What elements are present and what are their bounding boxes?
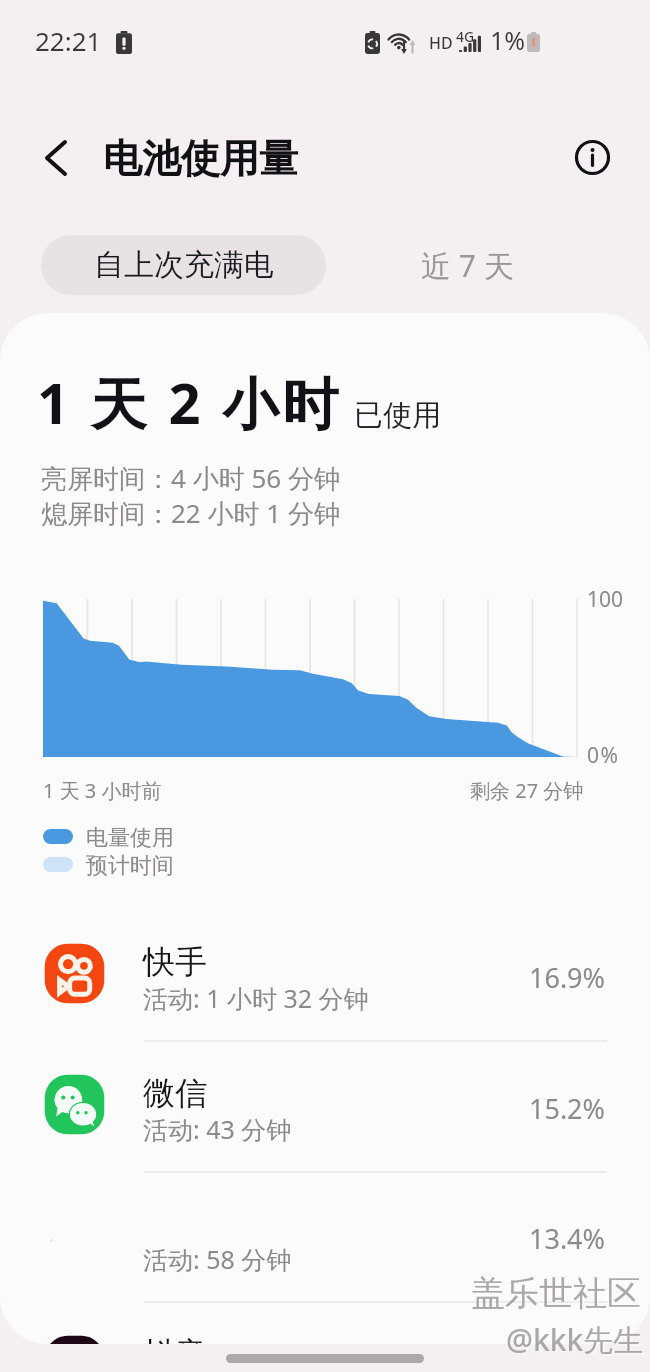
staticText: 已使用	[354, 397, 441, 434]
staticText: 剩余 27 分钟	[470, 777, 584, 804]
staticText: 4G	[456, 27, 475, 46]
staticText: 13.4%	[529, 1220, 606, 1256]
staticText: 盖乐世社区	[473, 1274, 643, 1317]
staticText: 微信	[143, 1073, 207, 1113]
button[interactable]: 快手	[0, 923, 650, 1054]
staticText: 亮屏时间：4 小时 56 分钟	[41, 460, 340, 496]
button[interactable]: 活动: 58 分钟	[0, 1184, 650, 1315]
button[interactable]: Information	[570, 135, 615, 180]
staticText: 电量使用	[86, 824, 174, 852]
staticText: 快手	[143, 942, 207, 982]
button[interactable]: Back	[30, 133, 80, 183]
staticText: 1 天 2 小时	[37, 364, 342, 440]
staticText: @kkk先生	[506, 1319, 644, 1360]
staticText: 盖乐世社区	[471, 1272, 641, 1315]
staticText: 自上次充满电	[94, 246, 274, 284]
staticText: 近 7 天	[421, 245, 514, 286]
staticText: 抖音	[143, 1334, 207, 1344]
staticText: 15.2%	[529, 1090, 606, 1126]
staticText: HD	[429, 32, 453, 54]
staticText: 1 天 3 小时前	[43, 777, 162, 804]
staticText: 活动: 43 分钟	[143, 1112, 292, 1146]
staticText: 活动: 58 分钟	[143, 1242, 292, 1276]
staticText: 电池使用量	[103, 134, 298, 183]
staticText: @kkk先生	[508, 1321, 646, 1362]
staticText: 1%	[490, 23, 526, 57]
staticText: 0%	[587, 741, 620, 770]
button[interactable]: 抖音	[0, 1315, 650, 1344]
staticText: 熄屏时间：22 小时 1 分钟	[41, 495, 340, 531]
staticText: 活动: 1 小时 32 分钟	[143, 981, 369, 1015]
staticText: 预计时间	[86, 852, 174, 880]
staticText: 22:21	[35, 23, 102, 58]
button[interactable]: 自上次充满电	[41, 235, 326, 295]
button[interactable]: 微信	[0, 1054, 650, 1185]
button[interactable]: 近 7 天	[372, 235, 562, 295]
staticText: 16.9%	[529, 959, 606, 995]
staticText: 100	[587, 585, 624, 614]
